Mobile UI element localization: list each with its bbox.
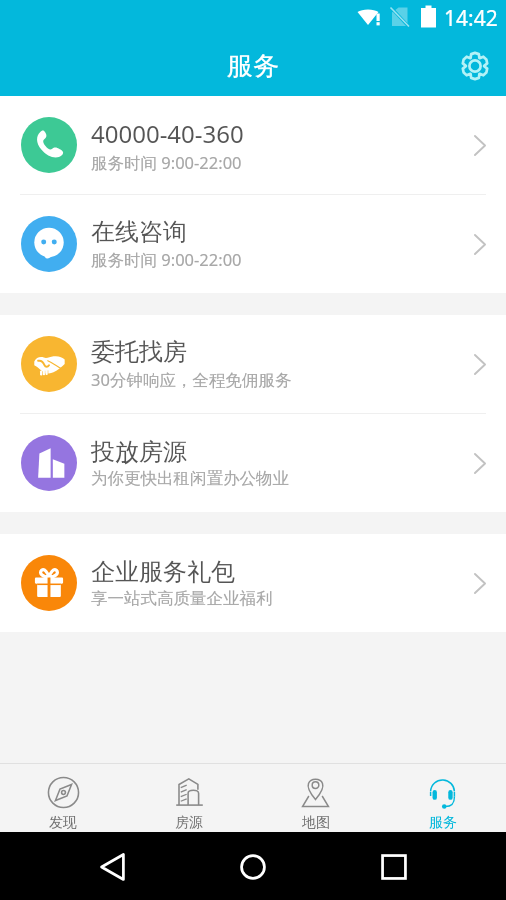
button[interactable]: 房源 [126, 764, 252, 832]
staticText: 为你更快出租闲置办公物业 [91, 468, 289, 489]
staticText: 服务时间 9:00-22:00 [91, 151, 242, 174]
button[interactable]: 服务 [379, 764, 506, 832]
button[interactable]: 40000-40-360 [0, 96, 506, 194]
staticText: 企业服务礼包 [91, 557, 235, 587]
staticText: 在线咨询 [91, 217, 187, 247]
button[interactable]: Recents [370, 843, 418, 891]
staticText: 服务 [227, 50, 279, 83]
button[interactable]: 投放房源 [0, 414, 506, 512]
staticText: 投放房源 [91, 437, 187, 467]
button[interactable]: Settings [453, 44, 497, 88]
button[interactable]: 发现 [0, 764, 126, 832]
button[interactable]: Home [229, 843, 277, 891]
staticText: 服务 [429, 814, 457, 832]
staticText: 40000-40-360 [91, 117, 244, 150]
staticText: 享一站式高质量企业福利 [91, 588, 273, 609]
staticText: 地图 [302, 814, 330, 832]
button[interactable]: 在线咨询 [0, 195, 506, 293]
staticText: 房源 [175, 814, 203, 832]
staticText: 委托找房 [91, 337, 187, 367]
button[interactable]: 企业服务礼包 [0, 534, 506, 632]
staticText: 发现 [49, 814, 77, 832]
button[interactable]: 委托找房 [0, 315, 506, 413]
button[interactable]: Back [89, 843, 137, 891]
staticText: 30分钟响应，全程免佣服务 [91, 368, 292, 391]
button[interactable]: 地图 [252, 764, 379, 832]
staticText: 14:42 [444, 4, 498, 33]
staticText: 服务时间 9:00-22:00 [91, 248, 242, 271]
